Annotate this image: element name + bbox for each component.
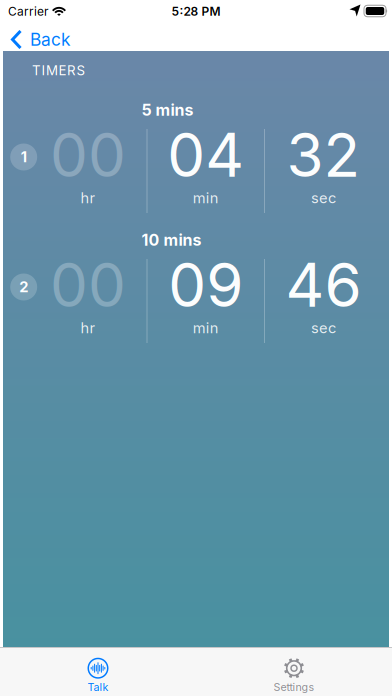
staticText: sec — [311, 189, 336, 207]
staticText: 5 mins — [141, 101, 193, 119]
staticText: TIMERS — [32, 63, 85, 78]
staticText: Talk — [87, 681, 108, 693]
staticText: 04 — [167, 120, 244, 190]
staticText: 32 — [286, 120, 360, 190]
staticText: Settings — [273, 681, 314, 693]
button[interactable]: Talk — [38, 648, 158, 696]
staticText: min — [193, 189, 219, 207]
staticText: 1 — [21, 148, 27, 166]
button[interactable]: 1 — [0, 96, 392, 226]
staticText: Back — [30, 29, 71, 50]
staticText: 00 — [50, 120, 126, 190]
staticText: 09 — [168, 250, 243, 320]
button[interactable]: 2 — [0, 226, 392, 356]
staticText: 10 mins — [141, 231, 201, 249]
staticText: hr — [80, 319, 95, 337]
staticText: Carrier — [8, 4, 49, 19]
staticText: 46 — [285, 250, 361, 320]
button[interactable]: Settings — [234, 648, 354, 696]
staticText: sec — [311, 319, 336, 337]
staticText: 5:28 PM — [171, 4, 220, 19]
staticText: 00 — [50, 250, 126, 320]
staticText: hr — [80, 189, 95, 207]
staticText: min — [193, 319, 219, 337]
staticText: 2 — [19, 278, 28, 296]
button[interactable]: Back — [11, 25, 121, 54]
